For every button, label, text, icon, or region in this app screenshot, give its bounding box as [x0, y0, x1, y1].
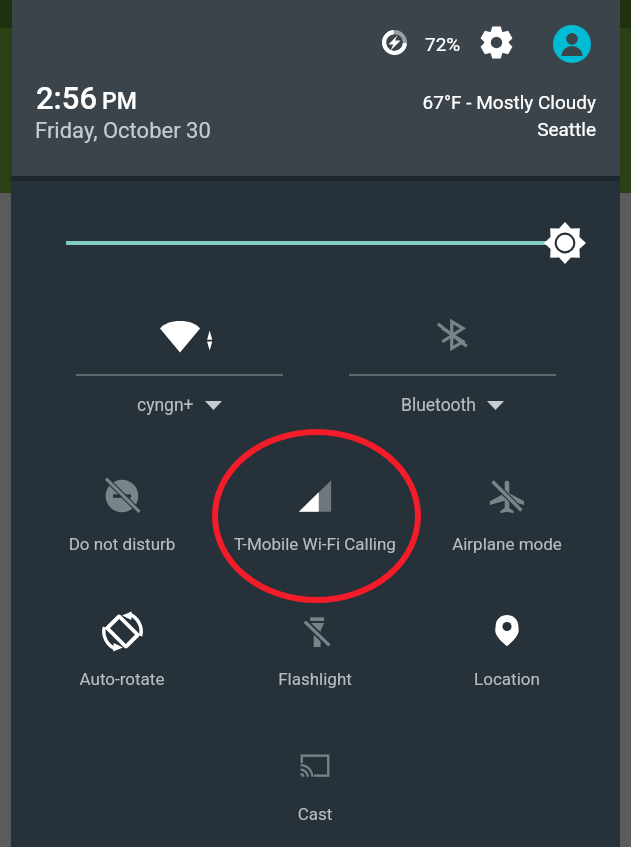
staticText: T-Mobile Wi-Fi Calling [222, 534, 408, 554]
button[interactable]: Bluetooth [349, 308, 556, 418]
button[interactable]: Cast [222, 732, 408, 832]
staticText: 72% [425, 33, 461, 55]
staticText: Flashlight [222, 669, 408, 689]
staticText: Location [414, 669, 600, 689]
staticText: Friday, October 30 [35, 118, 211, 144]
button[interactable]: Brightness [56, 222, 576, 264]
staticText: Seattle [537, 118, 596, 140]
staticText: 2:56 [36, 80, 98, 116]
button[interactable]: Settings [474, 20, 518, 64]
button[interactable]: cyngn+ [76, 308, 283, 418]
button[interactable]: Auto-rotate [29, 597, 215, 697]
staticText: Cast [222, 804, 408, 824]
button[interactable]: Flashlight [222, 597, 408, 697]
staticText: PM [102, 88, 137, 115]
button[interactable]: User profile [553, 25, 591, 63]
button[interactable]: Do not disturb [29, 462, 215, 562]
staticText: 67°F - Mostly Cloudy [422, 91, 596, 113]
staticText: Airplane mode [414, 534, 600, 554]
staticText: Do not disturb [29, 534, 215, 554]
button[interactable]: Airplane mode [414, 462, 600, 562]
staticText: Auto-rotate [29, 669, 215, 689]
button[interactable]: T-Mobile Wi-Fi Calling [222, 462, 408, 562]
staticText: Bluetooth [401, 395, 476, 416]
staticText: cyngn+ [137, 395, 194, 416]
button[interactable]: Location [414, 597, 600, 697]
